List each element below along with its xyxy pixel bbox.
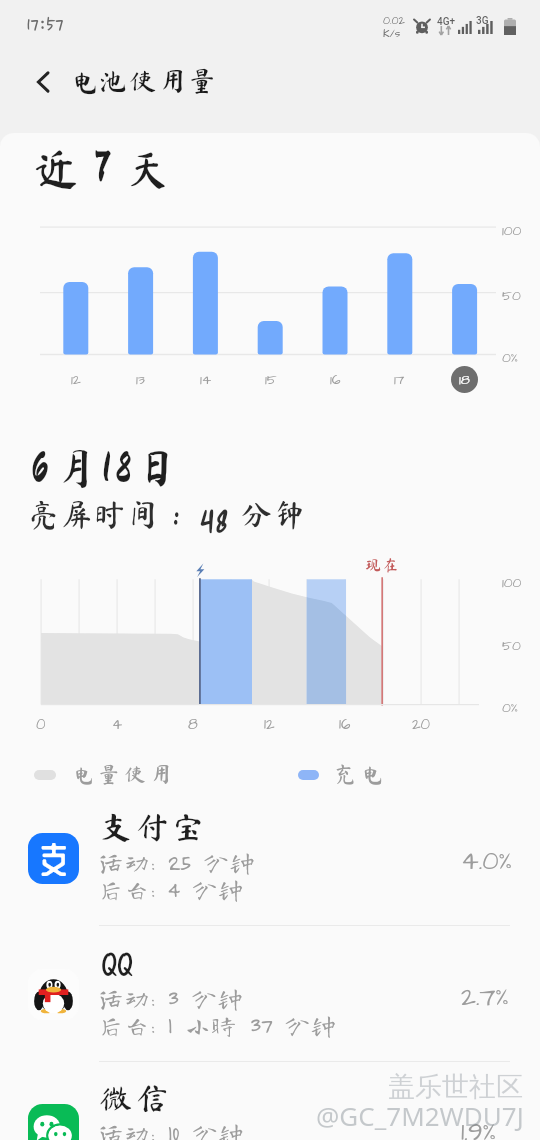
staticText: 现在 <box>365 557 401 573</box>
staticText: 电量使用 <box>72 764 177 785</box>
staticText: 12 <box>264 714 275 735</box>
button[interactable]: 14 <box>192 366 219 393</box>
staticText: 100 <box>502 573 522 592</box>
staticText: 0% <box>502 698 519 717</box>
staticText: 活动: 10 分钟 <box>98 1120 244 1140</box>
staticText: 电池使用量 <box>70 67 218 94</box>
staticText: 亮屏时间： <box>28 499 194 530</box>
staticText: 6月18日 <box>31 446 185 489</box>
staticText: 4G+ <box>437 16 456 28</box>
button[interactable]: 17 <box>386 366 413 393</box>
staticText: 微信 <box>100 1082 173 1114</box>
staticText: 50 <box>502 636 521 655</box>
staticText: 0.02 <box>383 13 405 28</box>
staticText: 0 <box>36 714 46 735</box>
staticText: QQ <box>101 945 134 982</box>
staticText: 活动: 3 分钟 <box>98 985 244 1011</box>
button[interactable]: 15 <box>257 366 284 393</box>
button[interactable] <box>298 770 319 780</box>
staticText: 1.9% <box>461 1114 497 1140</box>
button[interactable]: Back <box>19 59 63 103</box>
button[interactable]: 12 <box>62 366 89 393</box>
button[interactable]: 16 <box>322 366 349 393</box>
button[interactable]: 18 <box>451 366 478 393</box>
staticText: 18 <box>459 370 470 389</box>
button[interactable]: 13 <box>127 366 154 393</box>
staticText: 14 <box>200 370 212 389</box>
staticText: @GC_7M2WDU7J <box>316 1098 524 1133</box>
staticText: 盖乐世社区 <box>388 1070 523 1104</box>
button[interactable] <box>34 770 56 780</box>
staticText: 0% <box>502 348 519 367</box>
staticText: 分钟 <box>241 499 308 530</box>
staticText: 16 <box>339 714 351 735</box>
staticText: 13 <box>136 370 145 389</box>
staticText: 4 <box>112 714 123 735</box>
staticText: 12 <box>71 370 81 389</box>
button[interactable]: 支 <box>0 803 540 938</box>
staticText: 16 <box>330 370 341 389</box>
staticText: 15 <box>265 370 277 389</box>
staticText: 17 <box>394 370 405 389</box>
staticText: 50 <box>502 286 521 305</box>
staticText: 后台: 1 小时 37 分钟 <box>98 1012 337 1038</box>
staticText: 近7天 <box>34 146 186 190</box>
staticText: 17:57 <box>26 14 64 38</box>
staticText: 支 <box>40 840 68 876</box>
staticText: 充电 <box>334 763 388 785</box>
button[interactable]: 微信 <box>0 1074 540 1140</box>
staticText: 8 <box>188 714 198 735</box>
staticText: 3G <box>476 15 489 27</box>
staticText: 48 <box>199 489 230 542</box>
button[interactable]: QQ <box>0 939 540 1074</box>
staticText: 20 <box>412 714 431 735</box>
staticText: 支付宝 <box>100 811 209 843</box>
staticText: 4.0% <box>461 843 513 879</box>
staticText: K/s <box>383 26 401 41</box>
staticText: 100 <box>502 221 522 240</box>
staticText: 活动: 25 分钟 <box>98 849 255 875</box>
staticText: 2.7% <box>461 979 510 1015</box>
staticText: 后台: 4 分钟 <box>98 876 244 902</box>
